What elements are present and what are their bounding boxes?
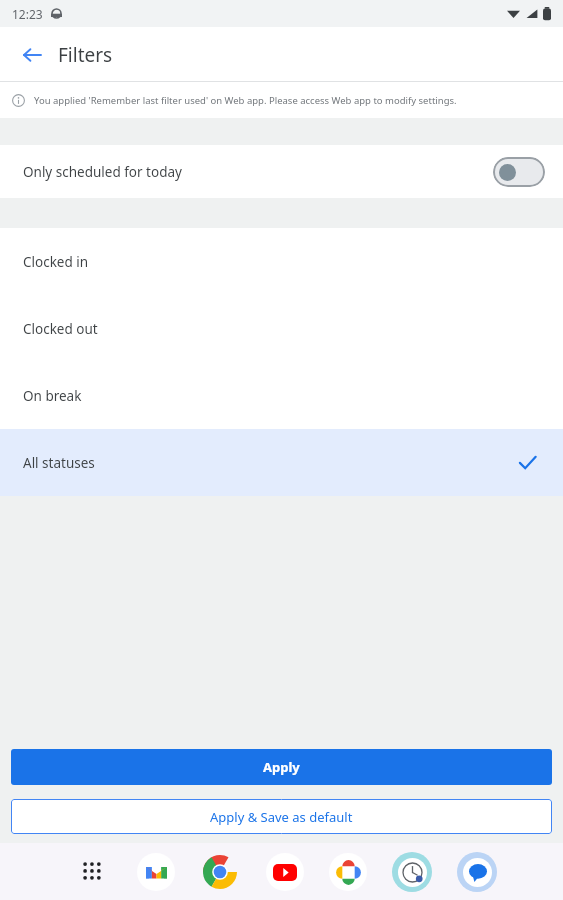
button[interactable]: Clocked in xyxy=(0,228,563,295)
button[interactable]: Clocked out xyxy=(0,295,563,362)
staticText: All statuses xyxy=(23,454,95,472)
staticText: 12:23 xyxy=(12,6,43,22)
button[interactable]: All apps xyxy=(74,853,112,891)
button[interactable]: Only scheduled for today xyxy=(0,145,563,198)
button[interactable]: Photos xyxy=(329,853,367,891)
staticText: On break xyxy=(23,387,82,405)
button[interactable]: On break xyxy=(0,362,563,429)
button[interactable]: Gmail xyxy=(137,853,175,891)
staticText: Clocked in xyxy=(23,253,89,271)
button[interactable]: Apply & Save as default xyxy=(11,799,552,834)
button[interactable]: All statuses xyxy=(0,429,563,496)
staticText: Apply xyxy=(263,758,300,776)
button[interactable]: YouTube xyxy=(266,853,304,891)
staticText: Filters xyxy=(58,42,113,68)
staticText: Clocked out xyxy=(23,320,98,338)
button[interactable]: Apply xyxy=(11,749,552,785)
staticText: You applied 'Remember last filter used' … xyxy=(34,94,457,107)
staticText: Apply & Save as default xyxy=(210,808,353,826)
button[interactable]: Messages xyxy=(457,852,497,892)
button[interactable]: Chrome xyxy=(200,852,240,892)
button[interactable]: Clock xyxy=(392,852,432,892)
staticText: Only scheduled for today xyxy=(23,163,182,181)
button[interactable]: Back xyxy=(10,33,54,77)
